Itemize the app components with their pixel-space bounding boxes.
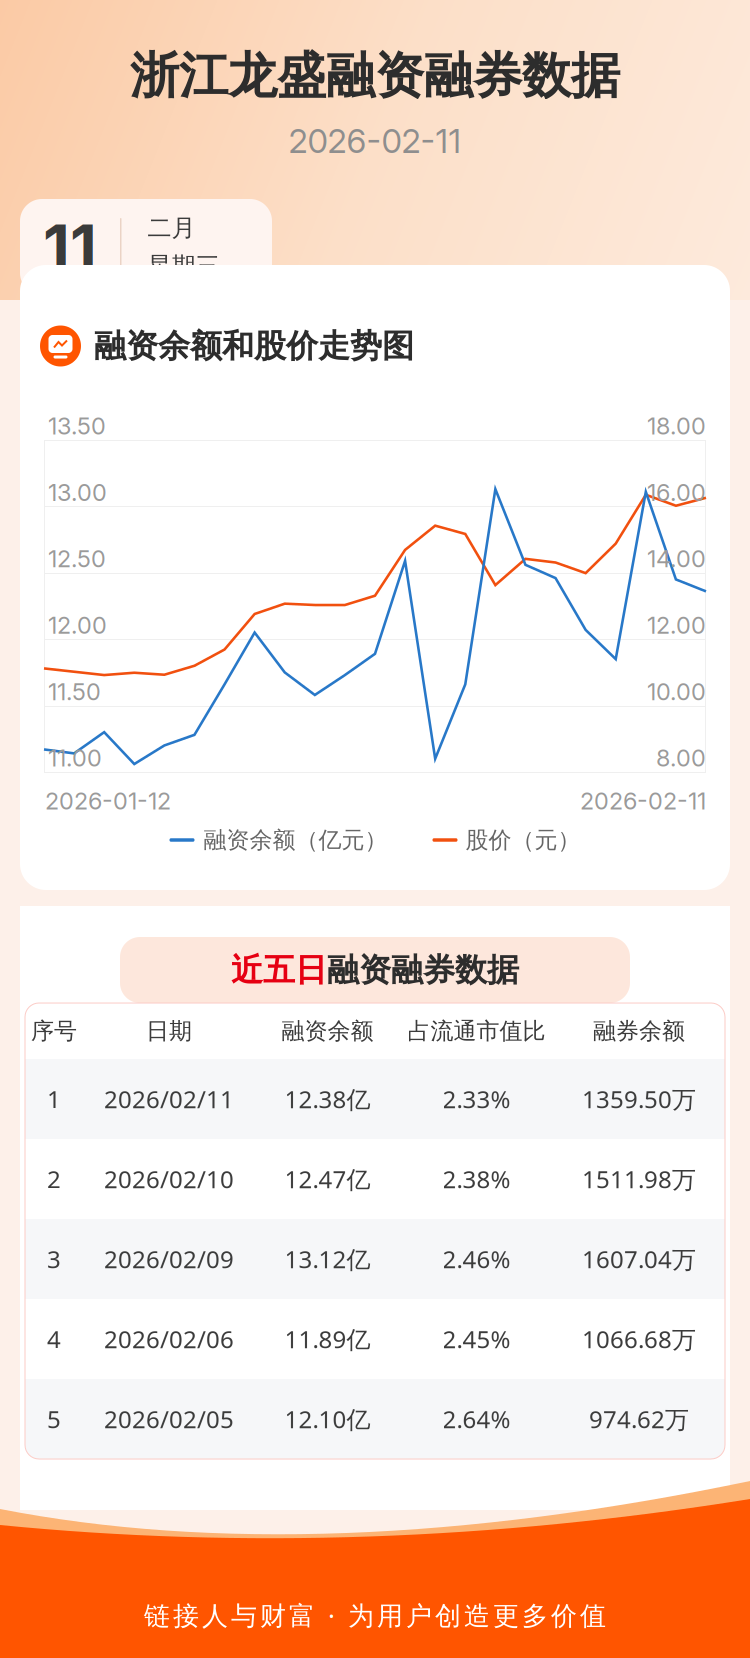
staticText: 11.00 (48, 744, 102, 772)
staticText: 2.45% (442, 1323, 510, 1355)
staticText: 链接人与财富 · 为用户创造更多价值 (144, 1597, 606, 1633)
staticText: 2.33% (442, 1083, 510, 1115)
staticText: 2026-01-12 (45, 787, 171, 815)
staticText: 融资余额（亿元） (203, 825, 387, 854)
staticText: 13.00 (48, 478, 107, 507)
staticText: 2.38% (442, 1163, 510, 1195)
staticText: 12.47亿 (284, 1163, 370, 1195)
staticText: 2.64% (442, 1403, 510, 1435)
staticText: 11.50 (48, 677, 101, 706)
staticText: 16.00 (647, 478, 706, 507)
staticText: 11 (43, 209, 97, 284)
staticText: 融资余额 (281, 1016, 373, 1045)
staticText: 2026/02/09 (104, 1243, 234, 1275)
staticText: 974.62万 (589, 1403, 689, 1435)
staticText: 浙江龙盛融资融券数据 (130, 45, 620, 107)
staticText: 融资余额和股价走势图 (94, 326, 414, 366)
staticText: 1 (47, 1083, 61, 1115)
staticText: 融资融券数据 (327, 950, 519, 990)
staticText: 12.10亿 (284, 1403, 370, 1435)
staticText: 2026-02-11 (288, 121, 461, 161)
staticText: 13.12亿 (284, 1243, 370, 1275)
staticText: 18.00 (647, 412, 706, 440)
staticText: 11.89亿 (284, 1323, 370, 1355)
staticText: 占流通市值比 (407, 1016, 545, 1045)
staticText: 2.46% (442, 1243, 510, 1275)
staticText: 星期三 (147, 251, 219, 281)
staticText: 2026/02/05 (104, 1403, 234, 1435)
staticText: 二月 (147, 213, 195, 243)
staticText: 4 (47, 1323, 61, 1355)
staticText: 2026/02/11 (104, 1083, 234, 1115)
staticText: 12.00 (48, 611, 107, 639)
staticText: 13.50 (48, 412, 106, 440)
staticText: 12.00 (647, 611, 706, 639)
staticText: 12.50 (48, 545, 106, 573)
staticText: 8.00 (656, 744, 706, 772)
staticText: 1066.68万 (582, 1323, 696, 1355)
staticText: 融券余额 (593, 1016, 685, 1045)
staticText: 3 (47, 1243, 61, 1275)
staticText: 2026/02/10 (104, 1163, 234, 1195)
staticText: 5 (47, 1403, 61, 1435)
staticText: 1359.50万 (582, 1083, 696, 1115)
staticText: 序号 (31, 1016, 77, 1045)
staticText: 2 (47, 1163, 61, 1195)
staticText: 10.00 (647, 677, 706, 706)
staticText: 14.00 (647, 545, 706, 573)
staticText: 2026-02-11 (580, 787, 706, 815)
staticText: 日期 (146, 1016, 192, 1045)
staticText: 近五日 (231, 950, 327, 990)
staticText: 1607.04万 (582, 1243, 696, 1275)
staticText: 2026/02/06 (104, 1323, 234, 1355)
staticText: 1511.98万 (582, 1163, 696, 1195)
staticText: 股价（元） (465, 825, 580, 854)
staticText: 12.38亿 (284, 1083, 370, 1115)
